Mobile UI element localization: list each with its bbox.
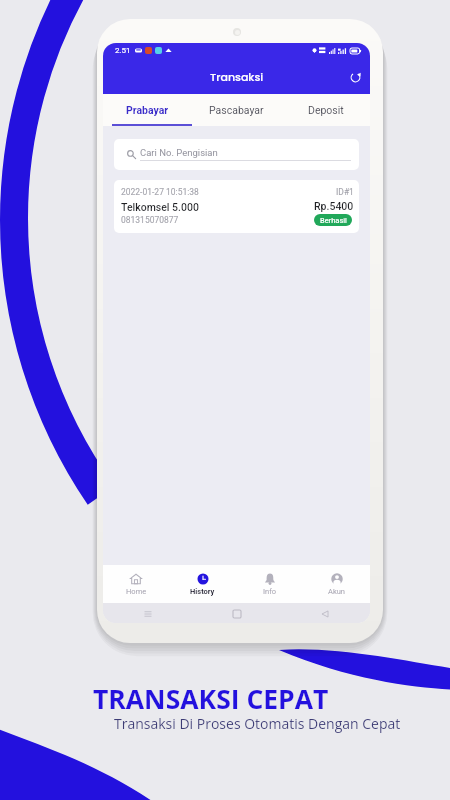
button[interactable]: History — [169, 565, 236, 603]
button[interactable]: Home — [103, 565, 169, 603]
staticText: Prabayar — [126, 104, 169, 116]
staticText: ID#1 — [336, 187, 354, 197]
staticText: 2022-01-27 10:51:38 — [121, 187, 199, 197]
staticText: Info — [263, 587, 277, 596]
staticText: 081315070877 — [121, 215, 179, 225]
button[interactable]: Recents — [142, 608, 153, 619]
staticText: Pascabayar — [209, 104, 264, 116]
button[interactable]: Cari No. Pengisian — [114, 139, 359, 170]
staticText: Deposit — [308, 104, 344, 116]
button[interactable]: Pascabayar — [192, 94, 281, 126]
staticText: TRANSAKSI CEPAT — [93, 681, 329, 717]
staticText: Akun — [328, 587, 345, 596]
button[interactable]: Prabayar — [103, 94, 192, 126]
button[interactable]: Back — [319, 608, 330, 619]
staticText: Rp.5400 — [314, 200, 354, 212]
button[interactable]: Akun — [303, 565, 370, 603]
button[interactable]: Info — [236, 565, 303, 603]
staticText: Telkomsel 5.000 — [121, 201, 199, 213]
staticText: History — [190, 587, 215, 596]
staticText: Transaksi — [210, 69, 264, 84]
staticText: Home — [126, 587, 147, 596]
button[interactable]: Refresh — [345, 67, 366, 88]
staticText: Transaksi Di Proses Otomatis Dengan Cepa… — [114, 714, 401, 733]
button[interactable]: Home — [231, 608, 242, 619]
staticText: Berhasil — [320, 216, 347, 225]
button[interactable]: 2022-01-27 10:51:38 — [114, 180, 359, 233]
staticText: 2.51 — [115, 46, 131, 55]
button[interactable]: Deposit — [281, 94, 370, 126]
staticText: Cari No. Pengisian — [140, 147, 218, 158]
